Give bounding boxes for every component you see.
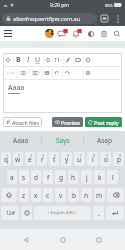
button[interactable]: g bbox=[55, 170, 66, 184]
button[interactable]: More options bbox=[111, 12, 124, 25]
staticText: 3 bbox=[30, 153, 33, 158]
button[interactable]: a bbox=[7, 170, 17, 184]
button[interactable]: o bbox=[100, 152, 111, 166]
staticText: i bbox=[92, 155, 94, 164]
button[interactable]: Insert image bbox=[73, 53, 83, 66]
staticText: Post reply bbox=[94, 119, 119, 126]
button[interactable]: e bbox=[25, 152, 35, 166]
button[interactable]: u bbox=[74, 152, 85, 166]
staticText: B bbox=[16, 55, 21, 65]
button[interactable]: Post reply bbox=[85, 117, 122, 127]
staticText: 6 bbox=[67, 153, 70, 158]
button[interactable]: Dark mode bbox=[84, 27, 97, 40]
staticText: o bbox=[104, 155, 108, 164]
staticText: u bbox=[77, 155, 82, 164]
button[interactable]: T1· bbox=[53, 53, 63, 66]
button[interactable]: t bbox=[49, 152, 59, 166]
staticText: e bbox=[28, 155, 32, 164]
button[interactable]: Says bbox=[42, 131, 83, 150]
button[interactable]: Tabs bbox=[97, 11, 111, 25]
button[interactable]: y bbox=[61, 152, 72, 166]
button[interactable]: Bullet list bbox=[16, 67, 29, 79]
button[interactable]: Preview bbox=[52, 117, 83, 127]
button[interactable]: b bbox=[68, 188, 79, 202]
button[interactable]: Insert emoji bbox=[83, 53, 93, 66]
button[interactable]: ‹ English (UK) › bbox=[34, 206, 91, 220]
staticText: 2 bbox=[18, 153, 21, 158]
button[interactable]: Shift bbox=[1, 188, 17, 202]
button[interactable]: More bbox=[3, 67, 16, 79]
staticText: f bbox=[47, 173, 50, 182]
button[interactable]: Asap bbox=[84, 131, 125, 150]
button[interactable]: w bbox=[13, 152, 23, 166]
staticText: . bbox=[98, 209, 100, 218]
staticText: q bbox=[4, 155, 8, 164]
button[interactable]: Back bbox=[16, 230, 36, 250]
button[interactable]: r bbox=[37, 152, 47, 166]
staticText: Aaaa bbox=[8, 83, 25, 93]
button[interactable]: U bbox=[33, 53, 43, 66]
button[interactable]: Search bbox=[110, 27, 123, 40]
button[interactable]: Text colour bbox=[43, 53, 53, 66]
button[interactable]: h bbox=[68, 170, 79, 184]
staticText: l bbox=[112, 173, 114, 182]
staticText: p bbox=[117, 155, 121, 164]
button[interactable]: s bbox=[19, 170, 29, 184]
button[interactable]: Alerts bbox=[70, 27, 83, 40]
button[interactable]: Recent apps bbox=[89, 230, 109, 250]
button[interactable]: Attach files bbox=[3, 117, 42, 127]
button[interactable]: Backspace bbox=[107, 188, 124, 202]
staticText: 0 bbox=[119, 153, 122, 158]
staticText: 7 bbox=[80, 153, 83, 158]
button[interactable]: alianfrequentflyer.com.au bbox=[2, 13, 97, 24]
staticText: 12# bbox=[6, 210, 15, 217]
staticText: 4 bbox=[42, 153, 45, 158]
button[interactable]: Emoji bbox=[21, 206, 32, 220]
staticText: Preview bbox=[61, 119, 80, 126]
button[interactable]: I bbox=[23, 53, 33, 66]
button[interactable]: k bbox=[94, 170, 105, 184]
staticText: v bbox=[59, 191, 63, 200]
staticText: h bbox=[71, 173, 76, 182]
button[interactable]: x bbox=[31, 188, 41, 202]
button[interactable]: d bbox=[31, 170, 41, 184]
staticText: a bbox=[10, 173, 14, 182]
button[interactable]: i bbox=[87, 152, 98, 166]
button[interactable]: Home bbox=[53, 230, 73, 250]
button[interactable]: Bookmarks bbox=[97, 27, 110, 40]
button[interactable]: f bbox=[43, 170, 53, 184]
staticText: 85% bbox=[105, 3, 113, 8]
button[interactable]: Settings bbox=[83, 67, 93, 79]
button[interactable]: p bbox=[113, 152, 124, 166]
staticText: alianfrequentflyer.com.au bbox=[13, 15, 81, 23]
button[interactable]: Menu bbox=[1, 27, 14, 40]
button[interactable]: Your profile bbox=[45, 29, 54, 38]
button[interactable]: l bbox=[107, 170, 118, 184]
button[interactable]: Aaaa bbox=[0, 131, 41, 150]
button[interactable]: c bbox=[43, 188, 53, 202]
button[interactable]: Insert link bbox=[63, 53, 73, 66]
button[interactable]: z bbox=[19, 188, 29, 202]
button[interactable]: v bbox=[55, 188, 66, 202]
staticText: k bbox=[98, 173, 102, 182]
button[interactable]: Format paint bbox=[3, 53, 13, 66]
button[interactable]: B bbox=[13, 53, 23, 66]
button[interactable]: Undo bbox=[52, 67, 62, 79]
button[interactable]: Redo bbox=[62, 67, 72, 79]
staticText: s bbox=[22, 173, 26, 182]
staticText: Asap bbox=[97, 136, 112, 145]
button[interactable]: m bbox=[94, 188, 105, 202]
staticText: j bbox=[86, 173, 88, 182]
button[interactable]: Messages bbox=[56, 27, 69, 40]
button[interactable]: n bbox=[81, 188, 92, 202]
staticText: 8 bbox=[93, 153, 96, 158]
button[interactable]: Alignment bbox=[29, 67, 42, 79]
button[interactable]: Table bbox=[42, 67, 52, 79]
button[interactable]: j bbox=[81, 170, 92, 184]
button[interactable]: 12# bbox=[1, 206, 19, 220]
button[interactable]: . bbox=[93, 206, 104, 220]
staticText: Aaaa bbox=[13, 136, 29, 145]
button[interactable]: q bbox=[1, 152, 11, 166]
button[interactable]: Enter bbox=[106, 206, 124, 220]
staticText: 9 bbox=[106, 153, 109, 158]
